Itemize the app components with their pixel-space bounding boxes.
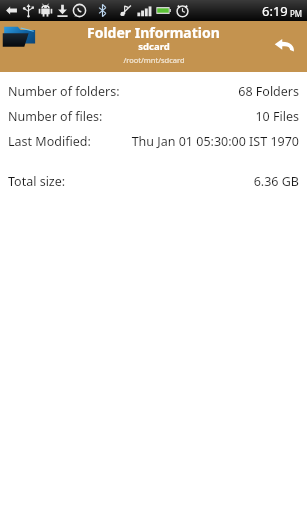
staticText: Total size: bbox=[8, 173, 66, 190]
button[interactable]: Last Modified: bbox=[0, 129, 307, 154]
button[interactable]: Number of files: bbox=[0, 104, 307, 129]
staticText: Thu Jan 01 05:30:00 IST 1970 bbox=[131, 133, 299, 150]
button[interactable]: Back bbox=[267, 30, 301, 64]
staticText: Number of folders: bbox=[8, 83, 120, 100]
staticText: Last Modified: bbox=[8, 133, 91, 150]
button[interactable]: Total size: bbox=[0, 169, 307, 194]
staticText: /root/mnt/sdcard bbox=[123, 55, 185, 65]
staticText: Number of files: bbox=[8, 108, 103, 125]
staticText: sdcard bbox=[138, 40, 170, 53]
staticText: 6:19 bbox=[262, 2, 288, 20]
staticText: 68 Folders bbox=[238, 83, 299, 100]
button[interactable]: Number of folders: bbox=[0, 79, 307, 104]
button[interactable]: Folder bbox=[2, 22, 38, 49]
staticText: PM bbox=[290, 8, 303, 19]
staticText: 6.36 GB bbox=[253, 173, 299, 190]
staticText: 10 Files bbox=[255, 108, 299, 125]
staticText: Folder Information bbox=[87, 23, 220, 42]
